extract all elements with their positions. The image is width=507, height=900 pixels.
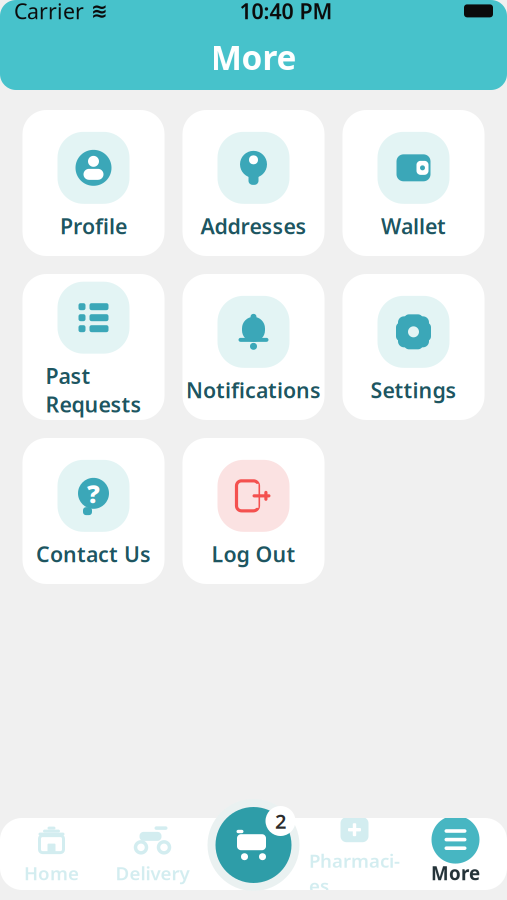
staticText: Delivery [115, 861, 189, 885]
staticText: Contact Us [36, 540, 151, 568]
staticText: Carrier [14, 0, 84, 25]
staticText: 2 [275, 808, 286, 834]
button[interactable]: Notifications [182, 274, 324, 420]
button[interactable]: Wallet [342, 110, 484, 256]
button[interactable]: Profile [22, 110, 164, 256]
button[interactable]: Home [1, 818, 102, 890]
button[interactable]: ? [22, 438, 164, 584]
staticText: Settings [370, 376, 456, 404]
staticText: ? [87, 476, 100, 510]
staticText: More [210, 35, 296, 79]
staticText: Profile [60, 212, 127, 240]
button[interactable]: Pharmacies [304, 818, 405, 890]
staticText: Home [24, 861, 79, 885]
staticText: Pharmacies [309, 848, 400, 898]
staticText: ≋ [91, 0, 108, 22]
button[interactable]: Delivery [102, 818, 203, 890]
staticText: Log Out [211, 540, 295, 568]
staticText: Wallet [381, 212, 446, 240]
staticText: Addresses [200, 212, 306, 240]
button[interactable]: Past Requests [22, 274, 164, 420]
button[interactable]: Log Out [182, 438, 324, 584]
button[interactable]: Settings [342, 274, 484, 420]
button[interactable]: Cart, 2 items [207, 799, 299, 891]
button[interactable]: Addresses [182, 110, 324, 256]
staticText: More [431, 861, 480, 885]
button[interactable]: More [405, 818, 506, 890]
staticText: 10:40 PM [239, 0, 332, 25]
staticText: Past Requests [45, 362, 141, 418]
staticText: Notifications [186, 376, 321, 404]
